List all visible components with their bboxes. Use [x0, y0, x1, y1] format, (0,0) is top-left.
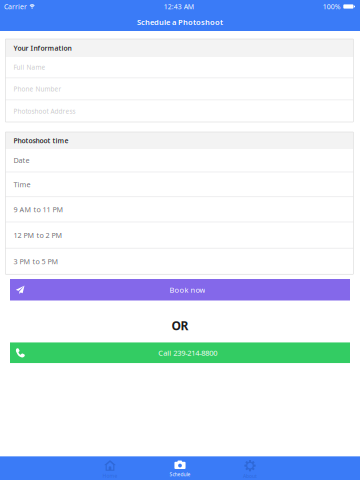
staticText: Full Name — [13, 63, 45, 72]
button[interactable]: Time — [5, 173, 353, 197]
button[interactable]: Home — [75, 456, 145, 480]
button[interactable]: Date — [5, 149, 353, 173]
button[interactable]: Photoshoot Address — [5, 100, 353, 122]
button[interactable]: 3 PM to 5 PM — [5, 249, 353, 274]
staticText: Carrier — [4, 2, 27, 11]
staticText: Book now — [169, 285, 205, 295]
button[interactable]: 9 AM to 11 PM — [5, 197, 353, 223]
button[interactable]: Book now — [10, 279, 350, 300]
staticText: Schedule — [169, 471, 190, 478]
staticText: Phone Number — [13, 85, 61, 93]
staticText: About — [243, 473, 257, 479]
staticText: 100% — [323, 2, 341, 11]
button[interactable]: Call 239-214-8800 — [10, 342, 350, 363]
staticText: 3 PM to 5 PM — [13, 257, 58, 266]
button[interactable]: Schedule — [145, 456, 215, 480]
staticText: Schedule a Photoshoot — [137, 17, 223, 27]
staticText: Time — [13, 179, 30, 189]
staticText: Photoshoot Address — [13, 107, 75, 116]
staticText: Date — [13, 155, 29, 165]
button[interactable]: About — [215, 456, 285, 480]
staticText: Photoshoot time — [13, 136, 68, 145]
button[interactable]: 12 PM to 2 PM — [5, 223, 353, 249]
button[interactable]: Phone Number — [5, 78, 353, 100]
staticText: Your Information — [13, 43, 71, 53]
staticText: OR — [171, 317, 188, 334]
button[interactable]: Full Name — [5, 57, 353, 78]
staticText: Call 239-214-8800 — [158, 348, 217, 358]
staticText: Home — [102, 472, 117, 479]
staticText: 12:43 AM — [164, 2, 194, 11]
staticText: 12 PM to 2 PM — [13, 230, 62, 240]
staticText: 9 AM to 11 PM — [13, 204, 63, 214]
